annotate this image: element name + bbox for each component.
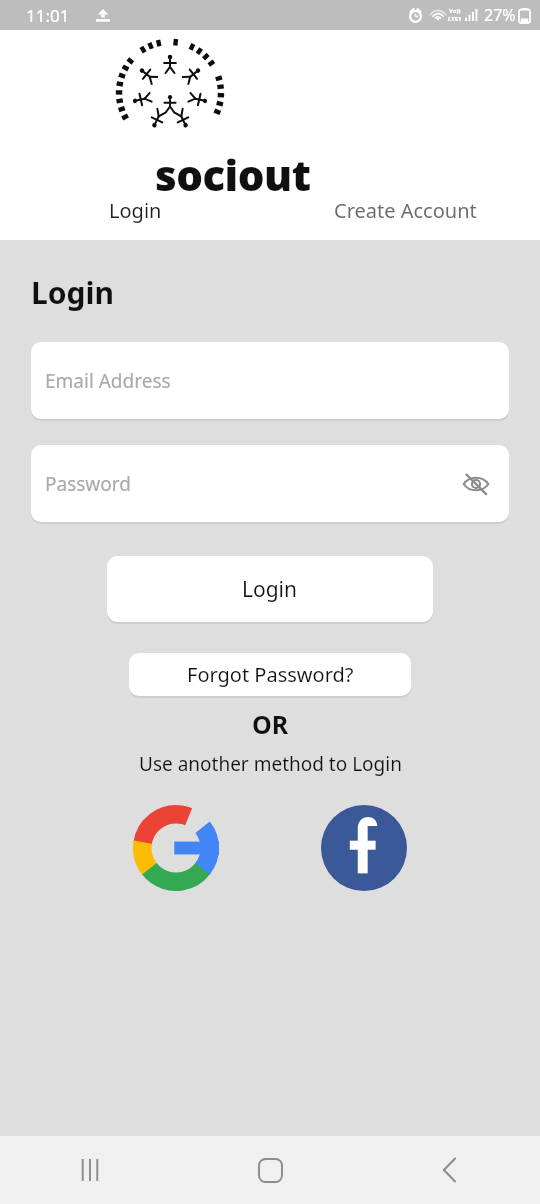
- button[interactable]: Email Address: [31, 342, 509, 419]
- button[interactable]: Show password: [459, 467, 493, 501]
- button[interactable]: Sign in with Facebook: [318, 802, 410, 894]
- staticText: Vo)): [449, 7, 461, 15]
- button[interactable]: Login: [0, 180, 270, 240]
- button[interactable]: Forgot Password?: [129, 653, 411, 696]
- staticText: Login: [109, 197, 162, 224]
- button[interactable]: Create Account: [270, 180, 540, 240]
- button[interactable]: Back: [360, 1136, 540, 1204]
- button[interactable]: Sign in with Google: [130, 802, 222, 894]
- staticText: Login: [242, 575, 298, 604]
- staticText: OR: [252, 707, 289, 741]
- staticText: 11:01: [26, 4, 70, 27]
- button[interactable]: Login: [107, 556, 433, 622]
- staticText: Password: [45, 471, 131, 497]
- button[interactable]: Home: [180, 1136, 360, 1204]
- staticText: sociout: [155, 146, 311, 203]
- staticText: Forgot Password?: [187, 661, 354, 688]
- staticText: Create Account: [334, 197, 477, 224]
- staticText: LTE1: [448, 15, 462, 23]
- button[interactable]: Password: [31, 445, 509, 522]
- button[interactable]: Recent apps: [0, 1136, 180, 1204]
- staticText: 27%: [484, 4, 516, 26]
- staticText: Login: [31, 272, 114, 313]
- staticText: Use another method to Login: [139, 751, 402, 777]
- staticText: Email Address: [45, 368, 171, 394]
